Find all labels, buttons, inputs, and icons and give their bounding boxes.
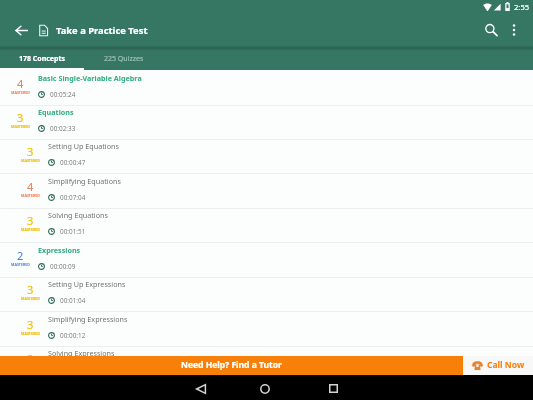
button[interactable]: Call Now: [463, 356, 533, 375]
button[interactable]: More options: [498, 13, 533, 47]
staticText: MASTERED: [21, 158, 40, 163]
staticText: 4: [27, 179, 34, 194]
button[interactable]: Back: [0, 13, 39, 47]
staticText: 00:00:47: [60, 158, 86, 167]
button[interactable]: Back: [178, 375, 223, 400]
staticText: 2: [17, 248, 24, 263]
button[interactable]: 4: [0, 71, 533, 105]
button[interactable]: 4: [0, 174, 533, 208]
staticText: Solving Expressions: [48, 348, 115, 358]
staticText: Setting Up Expressions: [48, 279, 126, 289]
staticText: Basic Single-Variable Algebra: [38, 73, 142, 83]
staticText: Call Now: [487, 359, 525, 371]
staticText: Setting Up Equations: [48, 141, 119, 151]
staticText: MASTERED: [21, 193, 40, 198]
button[interactable]: 225 Quizzes: [84, 0, 164, 70]
button[interactable]: 3: [0, 139, 533, 173]
staticText: MASTERED: [11, 90, 30, 95]
staticText: Equations: [38, 107, 74, 117]
staticText: 3: [17, 110, 24, 125]
staticText: 3: [27, 317, 34, 332]
button[interactable]: Home: [243, 375, 287, 400]
staticText: 3: [27, 144, 34, 159]
staticText: 00:02:33: [50, 124, 76, 133]
staticText: 3: [27, 351, 34, 366]
button[interactable]: 3: [0, 208, 533, 242]
staticText: Simplifying Equations: [48, 176, 121, 186]
staticText: Expressions: [38, 245, 81, 255]
button[interactable]: Recent apps: [311, 375, 355, 400]
staticText: Solving Equations: [48, 210, 108, 220]
staticText: MASTERED: [11, 262, 30, 267]
staticText: 3: [27, 282, 34, 297]
staticText: MASTERED: [21, 331, 40, 336]
button[interactable]: 3: [0, 105, 533, 139]
button[interactable]: Need Help? Find a Tutor: [0, 356, 533, 375]
staticText: MASTERED: [21, 227, 40, 232]
button[interactable]: 3: [0, 312, 533, 346]
staticText: 00:00:09: [50, 262, 76, 271]
staticText: 2:55: [514, 2, 530, 12]
staticText: 225 Quizzes: [104, 54, 144, 64]
staticText: Take a Practice Test: [56, 24, 148, 37]
button[interactable]: 3: [0, 346, 533, 380]
staticText: 00:07:04: [60, 193, 86, 202]
staticText: 00:01:51: [60, 227, 86, 236]
button[interactable]: Search: [458, 13, 498, 47]
staticText: Simplifying Expressions: [48, 314, 128, 324]
staticText: 4: [17, 76, 24, 91]
button[interactable]: 2: [0, 243, 533, 277]
staticText: MASTERED: [21, 296, 40, 301]
staticText: 178 Concepts: [19, 54, 66, 64]
button[interactable]: 178 Concepts: [0, 0, 84, 70]
staticText: 00:00:12: [60, 331, 86, 340]
staticText: 3: [27, 213, 34, 228]
button[interactable]: 3: [0, 277, 533, 311]
staticText: MASTERED: [11, 124, 30, 129]
staticText: Need Help? Find a Tutor: [181, 359, 282, 371]
staticText: 00:05:24: [50, 90, 76, 99]
staticText: 00:01:04: [60, 296, 86, 305]
